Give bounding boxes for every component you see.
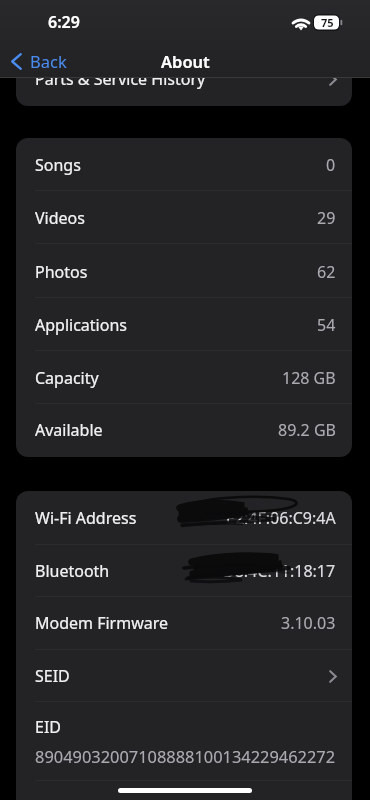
staticText: 3.10.03 [281, 612, 336, 634]
other: Wi-Fi [293, 16, 309, 29]
button[interactable]: Capacity [16, 351, 352, 404]
staticText: 75 [321, 15, 334, 30]
staticText: Back [30, 50, 67, 72]
staticText: Parts & Service History [35, 68, 206, 90]
staticText: 128 GB [282, 367, 336, 389]
staticText: 89.2 GB [278, 419, 336, 441]
button[interactable]: Bluetooth [16, 545, 352, 597]
button[interactable]: SEID [16, 650, 352, 702]
button[interactable]: Parts & Service History [16, 52, 352, 106]
staticText: E2:4F:06:C9:4A [226, 507, 336, 529]
button[interactable]: Applications [16, 298, 352, 351]
button[interactable]: Available [16, 404, 352, 456]
button[interactable]: Videos [16, 191, 352, 244]
staticText: SEID [35, 665, 70, 687]
button[interactable]: Songs [16, 138, 352, 191]
button[interactable]: Wi-Fi Address [16, 491, 352, 545]
button[interactable]: EID [16, 702, 352, 781]
staticText: 54 [317, 314, 336, 336]
staticText: Capacity [35, 367, 99, 389]
staticText: Bluetooth [35, 560, 110, 582]
button[interactable]: Photos [16, 245, 352, 298]
staticText: Photos [35, 261, 88, 283]
other: Battery 75 percent [314, 15, 342, 30]
staticText: Available [35, 419, 103, 441]
staticText: D8:4C:11:18:17 [223, 560, 336, 582]
staticText: 0 [326, 154, 336, 176]
staticText: EID [35, 716, 62, 738]
button[interactable]: Back [11, 50, 67, 72]
button[interactable]: Modem Firmware [16, 596, 352, 650]
staticText: Applications [35, 314, 127, 336]
staticText: 62 [317, 261, 336, 283]
staticText: Songs [35, 154, 81, 176]
staticText: Videos [35, 207, 85, 229]
staticText: About [161, 50, 210, 72]
staticText: 89049032007108888100134229462272 [35, 745, 336, 767]
staticText: 29 [317, 207, 336, 229]
staticText: Wi-Fi Address [35, 507, 137, 529]
staticText: 6:29 [48, 11, 80, 33]
staticText: Modem Firmware [35, 612, 169, 634]
